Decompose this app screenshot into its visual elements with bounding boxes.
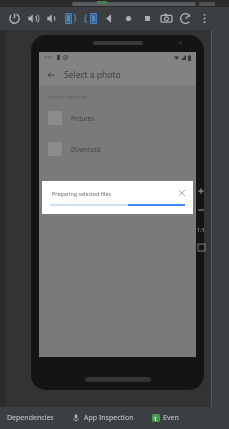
staticText: Even (163, 413, 179, 423)
button[interactable]: Home (119, 9, 138, 28)
staticText: 1:1 (197, 226, 205, 233)
button[interactable]: Dependencies (7, 413, 54, 423)
button[interactable]: Fit to screen (195, 241, 207, 253)
button[interactable]: App Inspection (72, 413, 134, 423)
button[interactable]: Zoom in (194, 184, 208, 198)
button[interactable]: Rotate right (81, 9, 100, 28)
button[interactable]: Zoom out (194, 203, 208, 217)
button[interactable]: Rotate left (62, 9, 81, 28)
staticText: 7:51 (44, 55, 53, 61)
button[interactable]: Pictures (39, 109, 196, 127)
button[interactable]: Volume up (24, 9, 43, 28)
staticText: 1 (154, 415, 158, 422)
button[interactable]: Back (100, 9, 119, 28)
button[interactable]: Navigate up (39, 63, 196, 86)
staticText: Dependencies (7, 413, 54, 423)
button[interactable]: Actual size (194, 222, 208, 236)
staticText: Select a photo (64, 69, 121, 81)
button[interactable]: Volume down (43, 9, 62, 28)
staticText: DEVICE FOLDERS (48, 95, 88, 101)
staticText: Download (71, 145, 101, 153)
button[interactable]: Screenshot (157, 9, 176, 28)
staticText: Preparing selected files (52, 190, 112, 197)
button[interactable]: More (195, 9, 214, 28)
button[interactable]: Navigate up (44, 68, 57, 81)
button[interactable]: Overview (138, 9, 157, 28)
button[interactable]: Power (5, 9, 24, 28)
button[interactable]: Rotate (176, 9, 195, 28)
staticText: App Inspection (84, 413, 134, 423)
button[interactable]: Download (39, 140, 196, 158)
staticText: Pictures (71, 114, 95, 122)
button[interactable]: 1 (152, 413, 179, 423)
button[interactable]: Close (176, 187, 187, 198)
